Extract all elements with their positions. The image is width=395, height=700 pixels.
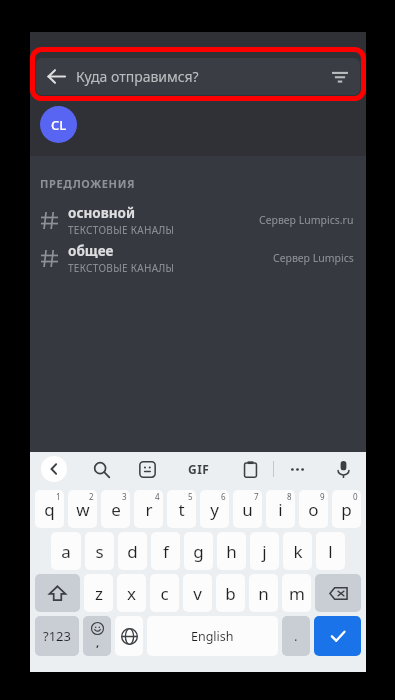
button[interactable]: u xyxy=(233,490,262,528)
button[interactable]: e xyxy=(101,490,130,528)
button[interactable]: r xyxy=(134,490,163,528)
staticText: 0 xyxy=(353,491,358,502)
staticText: k xyxy=(293,540,303,563)
staticText: m xyxy=(289,582,305,605)
staticText: i xyxy=(278,498,283,521)
staticText: x xyxy=(127,582,136,605)
staticText: ?123 xyxy=(43,627,71,645)
button[interactable]: h xyxy=(217,532,246,570)
button[interactable]: GIF xyxy=(170,452,227,486)
button[interactable]: p xyxy=(332,490,361,528)
button[interactable]: b xyxy=(216,574,245,612)
staticText: , xyxy=(96,635,100,650)
button[interactable]: j xyxy=(250,532,279,570)
staticText: y xyxy=(210,498,219,521)
staticText: 7 xyxy=(254,491,259,502)
button[interactable]: s xyxy=(85,532,114,570)
button[interactable]: i xyxy=(266,490,295,528)
button[interactable]: w xyxy=(68,490,97,528)
staticText: 3 xyxy=(122,491,127,502)
staticText: u xyxy=(242,498,253,521)
staticText: 6 xyxy=(221,491,226,502)
button[interactable]: d xyxy=(118,532,147,570)
button[interactable]: k xyxy=(283,532,312,570)
staticText: o xyxy=(308,498,319,521)
button[interactable]: f xyxy=(151,532,180,570)
button[interactable]: Emoji xyxy=(83,616,111,656)
button[interactable]: More options xyxy=(274,452,320,486)
button[interactable]: Back xyxy=(36,58,360,95)
staticText: общее xyxy=(68,242,114,260)
staticText: 1 xyxy=(56,491,61,502)
staticText: v xyxy=(193,582,202,605)
staticText: f xyxy=(163,540,169,563)
staticText: ПРЕДЛОЖЕНИЯ xyxy=(40,176,136,191)
staticText: p xyxy=(341,498,352,521)
button[interactable]: t xyxy=(167,490,196,528)
staticText: g xyxy=(193,540,204,563)
button[interactable]: q xyxy=(35,490,64,528)
button[interactable]: Filter xyxy=(320,58,360,95)
button[interactable]: v xyxy=(183,574,212,612)
staticText: Сервер Lumpics xyxy=(273,251,354,265)
button[interactable]: m xyxy=(282,574,311,612)
staticText: b xyxy=(225,582,236,605)
button[interactable]: основной xyxy=(30,201,366,239)
staticText: 5 xyxy=(188,491,193,502)
staticText: c xyxy=(160,582,169,605)
staticText: 8 xyxy=(287,491,292,502)
button[interactable]: a xyxy=(51,532,81,570)
button[interactable]: x xyxy=(117,574,146,612)
staticText: l xyxy=(328,540,333,563)
button[interactable]: n xyxy=(249,574,278,612)
staticText: ТЕКСТОВЫЕ КАНАЛЫ xyxy=(68,223,175,237)
button[interactable]: ?123 xyxy=(35,616,79,656)
button[interactable]: o xyxy=(299,490,328,528)
staticText: a xyxy=(61,540,71,563)
button[interactable]: Backspace xyxy=(315,574,361,612)
button[interactable]: z xyxy=(84,574,113,612)
button[interactable]: English xyxy=(147,616,278,656)
staticText: s xyxy=(95,540,104,563)
button[interactable]: Shift xyxy=(35,574,80,612)
staticText: d xyxy=(127,540,138,563)
staticText: Сервер Lumpics.ru xyxy=(259,213,354,227)
button[interactable]: Back xyxy=(36,58,76,95)
button[interactable]: Search xyxy=(78,452,124,486)
button[interactable]: y xyxy=(200,490,229,528)
staticText: CL xyxy=(51,116,67,134)
staticText: w xyxy=(76,498,90,521)
button[interactable]: общее xyxy=(30,239,366,277)
button[interactable]: Stickers xyxy=(124,452,170,486)
staticText: 2 xyxy=(89,491,94,502)
staticText: n xyxy=(258,582,269,605)
button[interactable]: Close toolbar xyxy=(30,452,78,486)
staticText: q xyxy=(44,498,55,521)
button[interactable]: Clipboard xyxy=(227,452,273,486)
button[interactable]: l xyxy=(316,532,345,570)
staticText: . xyxy=(294,627,298,645)
staticText: 4 xyxy=(155,491,160,502)
staticText: 9 xyxy=(320,491,325,502)
staticText: t xyxy=(178,498,185,521)
staticText: r xyxy=(145,498,153,521)
button[interactable]: . xyxy=(282,616,310,656)
staticText: GIF xyxy=(188,461,210,477)
button[interactable]: Enter xyxy=(314,616,361,656)
button[interactable]: CL xyxy=(40,106,77,143)
button[interactable]: Change language xyxy=(115,616,143,656)
staticText: h xyxy=(226,540,237,563)
staticText: z xyxy=(95,582,103,605)
button[interactable]: g xyxy=(184,532,213,570)
staticText: j xyxy=(262,540,267,563)
button[interactable]: c xyxy=(150,574,179,612)
staticText: e xyxy=(111,498,121,521)
staticText: English xyxy=(191,628,234,645)
staticText: ТЕКСТОВЫЕ КАНАЛЫ xyxy=(68,261,175,275)
button[interactable]: Voice input xyxy=(320,452,366,486)
staticText: основной xyxy=(68,204,136,222)
staticText: Куда отправимся? xyxy=(76,67,199,86)
